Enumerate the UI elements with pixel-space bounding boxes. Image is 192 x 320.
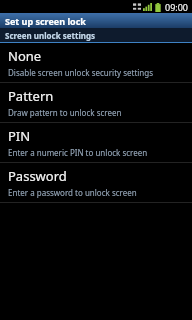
button[interactable]: Pattern bbox=[0, 83, 192, 122]
staticText: Draw pattern to unlock screen bbox=[8, 107, 122, 118]
button[interactable]: PIN bbox=[0, 123, 192, 162]
button[interactable]: None bbox=[0, 43, 192, 82]
staticText: 09:00 bbox=[165, 1, 189, 13]
staticText: None bbox=[8, 47, 42, 65]
staticText: Password bbox=[8, 167, 67, 185]
other: 3G network bbox=[133, 3, 141, 11]
button[interactable]: Password bbox=[0, 163, 192, 202]
button[interactable]: Set up screen lock bbox=[0, 13, 192, 28]
staticText: Screen unlock settings bbox=[5, 30, 96, 41]
other: Battery bbox=[155, 3, 161, 12]
staticText: Enter a numeric PIN to unlock screen bbox=[8, 147, 148, 158]
staticText: Enter a password to unlock screen bbox=[8, 187, 137, 198]
staticText: PIN bbox=[8, 127, 31, 145]
other: Signal strength bbox=[143, 3, 152, 11]
staticText: Disable screen unlock security settings bbox=[8, 67, 154, 78]
staticText: Pattern bbox=[8, 87, 54, 105]
staticText: Set up screen lock bbox=[5, 15, 86, 27]
